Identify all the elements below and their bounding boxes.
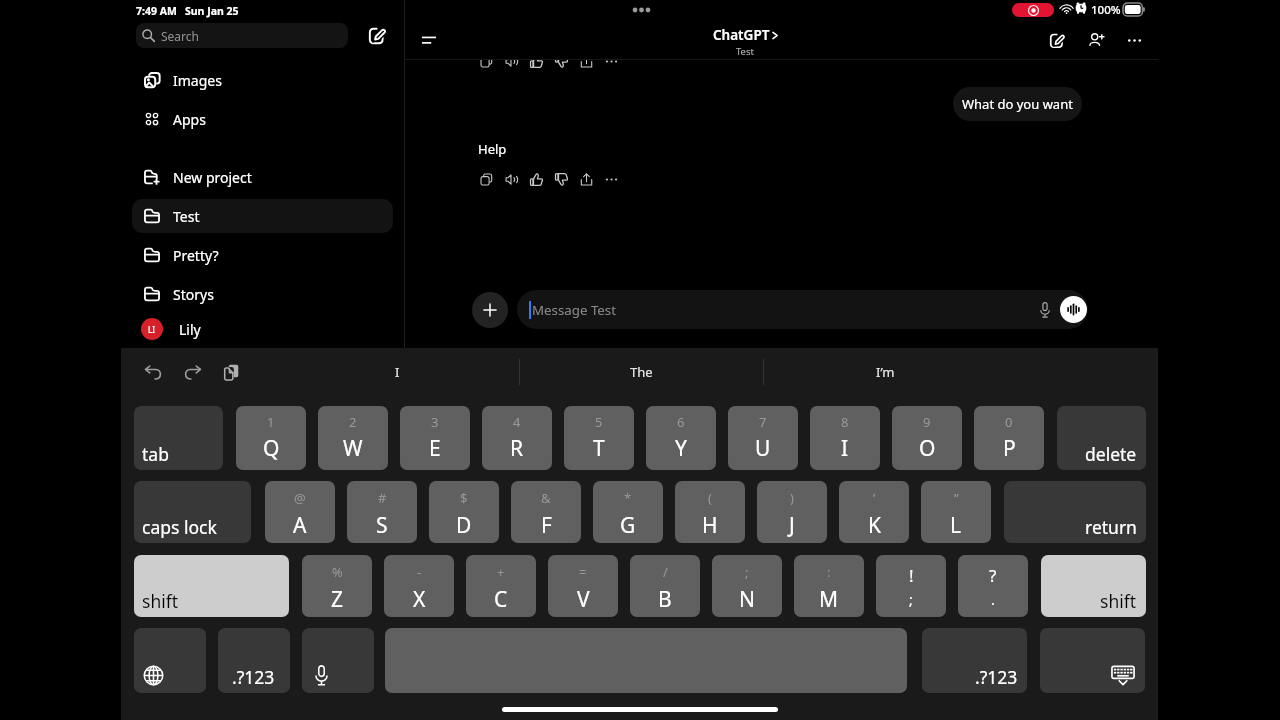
button[interactable]: .?123 — [218, 628, 290, 693]
button[interactable]: 9 — [892, 406, 962, 470]
button[interactable]: Storys — [132, 277, 393, 311]
button[interactable]: + — [466, 555, 536, 617]
staticText: LI — [148, 324, 156, 335]
staticText: ; — [909, 590, 913, 609]
staticText: I — [395, 363, 400, 381]
button[interactable]: ! — [876, 555, 946, 617]
staticText: H — [702, 511, 718, 540]
staticText: tab — [142, 442, 169, 466]
staticText: P — [1003, 434, 1016, 463]
button[interactable]: Test — [132, 199, 393, 233]
button[interactable]: New chat — [361, 19, 394, 52]
button[interactable]: I’m — [764, 356, 1007, 388]
button[interactable]: % — [302, 555, 372, 617]
button[interactable]: 2 — [318, 406, 388, 470]
staticText: $ — [460, 489, 468, 507]
button[interactable]: 0 — [974, 406, 1044, 470]
button[interactable]: Redo — [176, 356, 208, 388]
staticText: 100% — [1091, 2, 1121, 18]
button[interactable]: delete — [1057, 406, 1146, 470]
button[interactable]: & — [511, 481, 581, 543]
staticText: J — [789, 511, 795, 540]
button[interactable]: Good response — [524, 167, 549, 192]
button[interactable]: shift — [134, 555, 289, 617]
button[interactable]: Apps — [132, 102, 393, 136]
button[interactable]: I — [276, 356, 519, 388]
button[interactable]: $ — [429, 481, 499, 543]
button[interactable]: Copy — [474, 167, 499, 192]
button[interactable]: Message Test — [517, 290, 1088, 329]
button[interactable]: Share — [574, 60, 599, 74]
button[interactable]: Bad response — [549, 60, 574, 74]
button[interactable]: More options — [1118, 24, 1150, 56]
button[interactable]: 3 — [400, 406, 470, 470]
button[interactable]: 1 — [236, 406, 306, 470]
button[interactable]: Dictate — [1031, 296, 1059, 324]
button[interactable]: * — [593, 481, 663, 543]
staticText: Q — [263, 434, 280, 463]
button[interactable]: Images — [132, 63, 393, 97]
button[interactable]: shift — [1041, 555, 1146, 617]
staticText: # — [378, 489, 387, 507]
button[interactable]: Pretty? — [132, 238, 393, 272]
staticText: O — [919, 434, 936, 463]
button[interactable]: # — [347, 481, 417, 543]
button[interactable]: : — [794, 555, 864, 617]
button[interactable]: ) — [757, 481, 827, 543]
button[interactable] — [302, 628, 374, 693]
button[interactable]: Voice mode — [1060, 296, 1087, 323]
button[interactable] — [1040, 628, 1145, 693]
button[interactable]: 5 — [564, 406, 634, 470]
button[interactable]: Bad response — [549, 167, 574, 192]
staticText: 0 — [1005, 413, 1013, 431]
staticText: 7:49 AM — [136, 4, 177, 18]
button[interactable]: What do you want — [953, 87, 1082, 121]
button[interactable]: ” — [921, 481, 991, 543]
staticText: Test — [173, 207, 200, 226]
button[interactable]: - — [384, 555, 454, 617]
button[interactable]: More — [599, 60, 624, 74]
button[interactable]: @ — [265, 481, 335, 543]
button[interactable]: Read aloud — [499, 60, 524, 74]
button[interactable]: ? — [958, 555, 1028, 617]
button[interactable]: Share — [574, 167, 599, 192]
staticText: T — [593, 434, 605, 463]
button[interactable]: Paste — [215, 356, 247, 388]
button[interactable]: 6 — [646, 406, 716, 470]
staticText: ChatGPT — [713, 26, 770, 44]
button[interactable]: ( — [675, 481, 745, 543]
button[interactable]: return — [1004, 481, 1146, 543]
button[interactable]: LI — [132, 312, 393, 346]
button[interactable]: Attach — [472, 292, 508, 328]
button[interactable]: 8 — [810, 406, 880, 470]
button[interactable]: Menu — [413, 24, 445, 56]
button[interactable]: New chat — [1041, 24, 1073, 56]
staticText: caps lock — [142, 515, 217, 539]
button[interactable]: The — [520, 356, 763, 388]
button[interactable]: ; — [712, 555, 782, 617]
button[interactable]: Search — [136, 23, 348, 48]
button[interactable]: Add person — [1080, 24, 1112, 56]
button[interactable]: Copy — [474, 60, 499, 74]
staticText: S — [376, 511, 388, 540]
button[interactable]: caps lock — [134, 481, 251, 543]
staticText: ( — [708, 489, 712, 507]
button[interactable]: 7 — [728, 406, 798, 470]
staticText: New project — [173, 168, 252, 187]
button[interactable]: Read aloud — [499, 167, 524, 192]
button[interactable]: .?123 — [922, 628, 1027, 693]
button[interactable]: New project — [132, 160, 393, 194]
button[interactable]: ’ — [839, 481, 909, 543]
staticText: return — [1085, 515, 1137, 539]
button[interactable]: Undo — [137, 356, 169, 388]
button[interactable]: tab — [134, 406, 223, 470]
button[interactable]: / — [630, 555, 700, 617]
staticText: G — [620, 511, 636, 540]
button[interactable]: 4 — [482, 406, 552, 470]
button[interactable]: More — [599, 167, 624, 192]
button[interactable]: Good response — [524, 60, 549, 74]
staticText: The — [630, 363, 653, 381]
button[interactable] — [134, 628, 206, 693]
button[interactable]: = — [548, 555, 618, 617]
